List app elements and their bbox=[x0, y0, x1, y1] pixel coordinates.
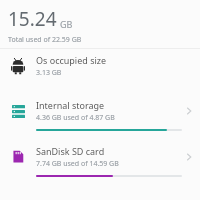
button[interactable]: Android OS bbox=[0, 49, 200, 93]
other: Android OS bbox=[0, 52, 36, 80]
staticText: Total used of 22.59 GB bbox=[8, 35, 82, 45]
staticText: Os occupied size bbox=[36, 54, 107, 66]
staticText: GB bbox=[60, 18, 73, 30]
button[interactable]: Internal storage bbox=[0, 93, 200, 139]
staticText: SanDisk SD card bbox=[36, 145, 105, 157]
staticText: 4.36 GB used of 4.87 GB bbox=[36, 113, 115, 123]
button[interactable]: SD card bbox=[0, 139, 200, 185]
staticText: 7.74 GB used of 14.59 GB bbox=[36, 159, 119, 169]
staticText: 3.13 GB bbox=[36, 68, 62, 78]
other: SD card bbox=[0, 143, 36, 171]
staticText: 15.24 bbox=[8, 6, 57, 32]
other: Internal storage bbox=[0, 97, 36, 125]
staticText: Internal storage bbox=[36, 99, 105, 111]
